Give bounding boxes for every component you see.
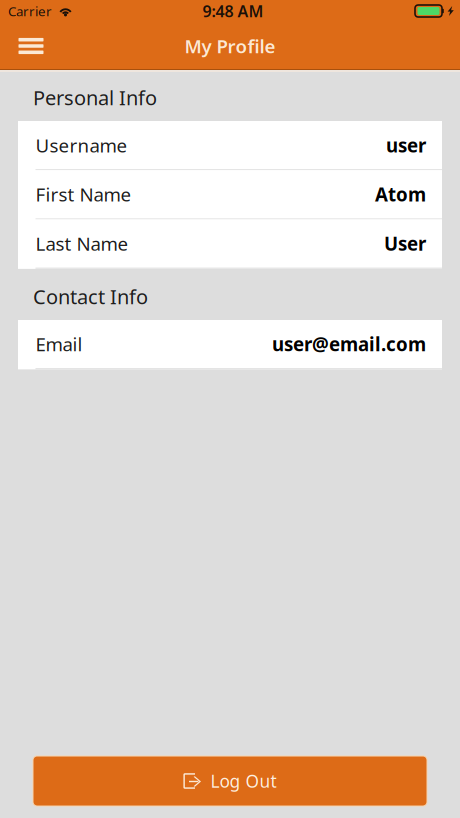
staticText: user [386,133,426,158]
staticText: Atom [375,182,426,207]
staticText: First Name [35,182,131,207]
button[interactable]: Menu [9,24,53,68]
staticText: User [384,231,426,256]
button[interactable]: Email [18,320,442,369]
staticText: My Profile [184,34,275,58]
staticText: Email [35,332,82,356]
staticText: Contact Info [33,283,148,310]
button[interactable]: Username [18,121,442,170]
staticText: user@email.com [272,332,426,356]
button[interactable]: First Name [18,170,442,219]
staticText: Username [35,133,127,158]
staticText: Personal Info [33,84,157,111]
staticText: Log Out [211,769,277,792]
button[interactable]: Last Name [18,219,442,269]
staticText: Carrier [8,2,52,20]
staticText: 9:48 AM [202,0,263,22]
button[interactable]: Log Out [33,756,427,806]
staticText: Last Name [35,231,128,256]
